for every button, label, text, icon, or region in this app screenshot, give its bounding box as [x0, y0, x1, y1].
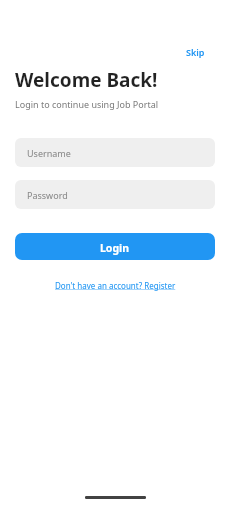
- staticText: Skip: [186, 46, 205, 58]
- staticText: Password: [27, 189, 68, 201]
- staticText: Username: [27, 147, 71, 159]
- staticText: Login: [100, 241, 130, 255]
- button[interactable]: Password: [15, 180, 215, 209]
- staticText: Login to continue using Job Portal: [15, 98, 159, 110]
- staticText: Welcome Back!: [15, 67, 158, 93]
- button[interactable]: Username: [15, 138, 215, 167]
- button[interactable]: Login: [15, 233, 215, 260]
- button[interactable]: Don't have an account? Register: [55, 280, 176, 291]
- button[interactable]: Skip: [186, 46, 205, 58]
- staticText: Don't have an account? Register: [55, 280, 176, 291]
